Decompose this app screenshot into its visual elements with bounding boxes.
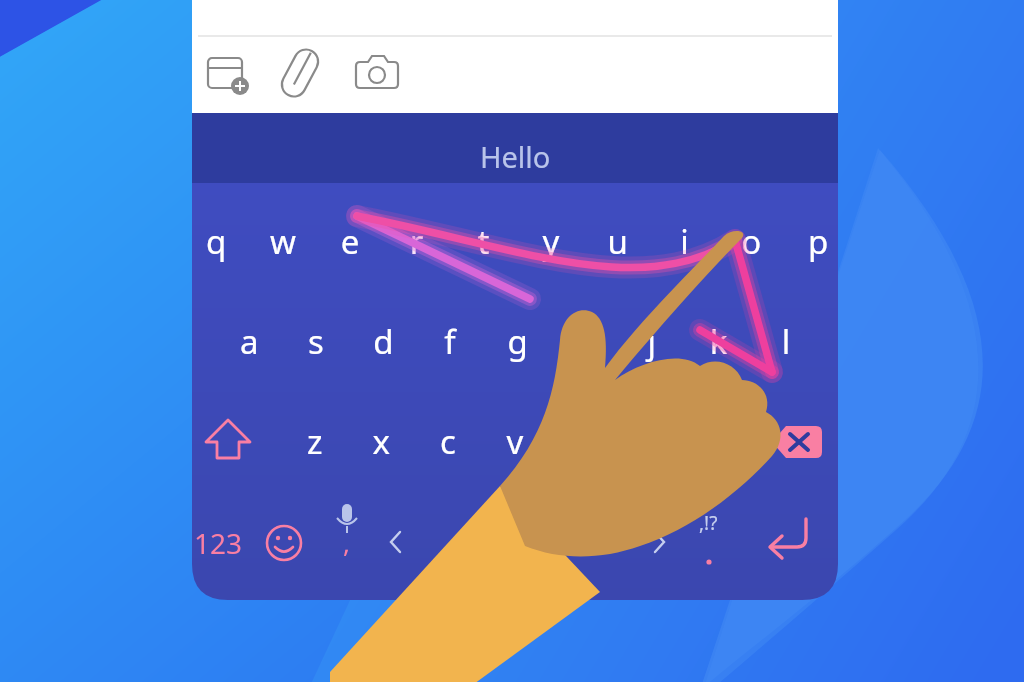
button[interactable]: Swipe keyboard illustration bbox=[0, 0, 1024, 682]
